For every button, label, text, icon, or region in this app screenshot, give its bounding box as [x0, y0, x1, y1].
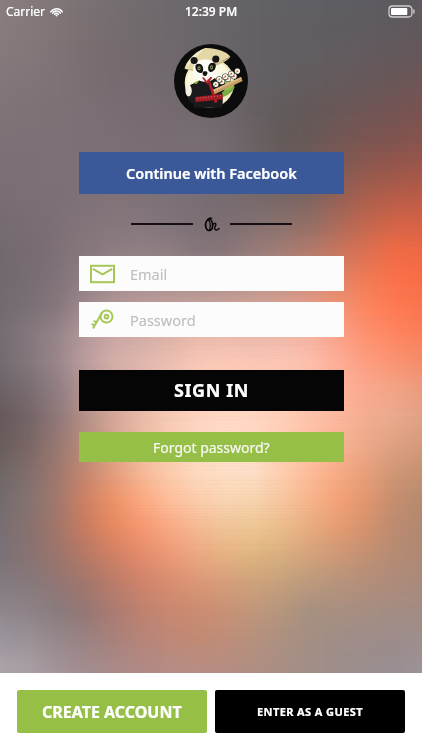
staticText: Email	[130, 264, 168, 284]
staticText: CREATE ACCOUNT	[42, 701, 182, 723]
button[interactable]: CREATE ACCOUNT	[17, 690, 207, 733]
staticText: Carrier	[6, 3, 46, 19]
button[interactable]: ENTER AS A GUEST	[215, 690, 405, 733]
staticText: ENTER AS A GUEST	[257, 704, 363, 719]
staticText: Password	[130, 310, 196, 330]
button[interactable]: SIGN IN	[79, 370, 344, 411]
button[interactable]: Email	[79, 256, 344, 291]
button[interactable]: Continue with Facebook	[79, 152, 344, 194]
staticText: Continue with Facebook	[126, 163, 297, 183]
staticText: 12:39 PM	[185, 3, 238, 19]
button[interactable]: Password	[79, 302, 344, 337]
staticText: Forgot password?	[153, 438, 270, 457]
staticText: SIGN IN	[174, 378, 250, 403]
button[interactable]: Forgot password?	[79, 432, 344, 462]
